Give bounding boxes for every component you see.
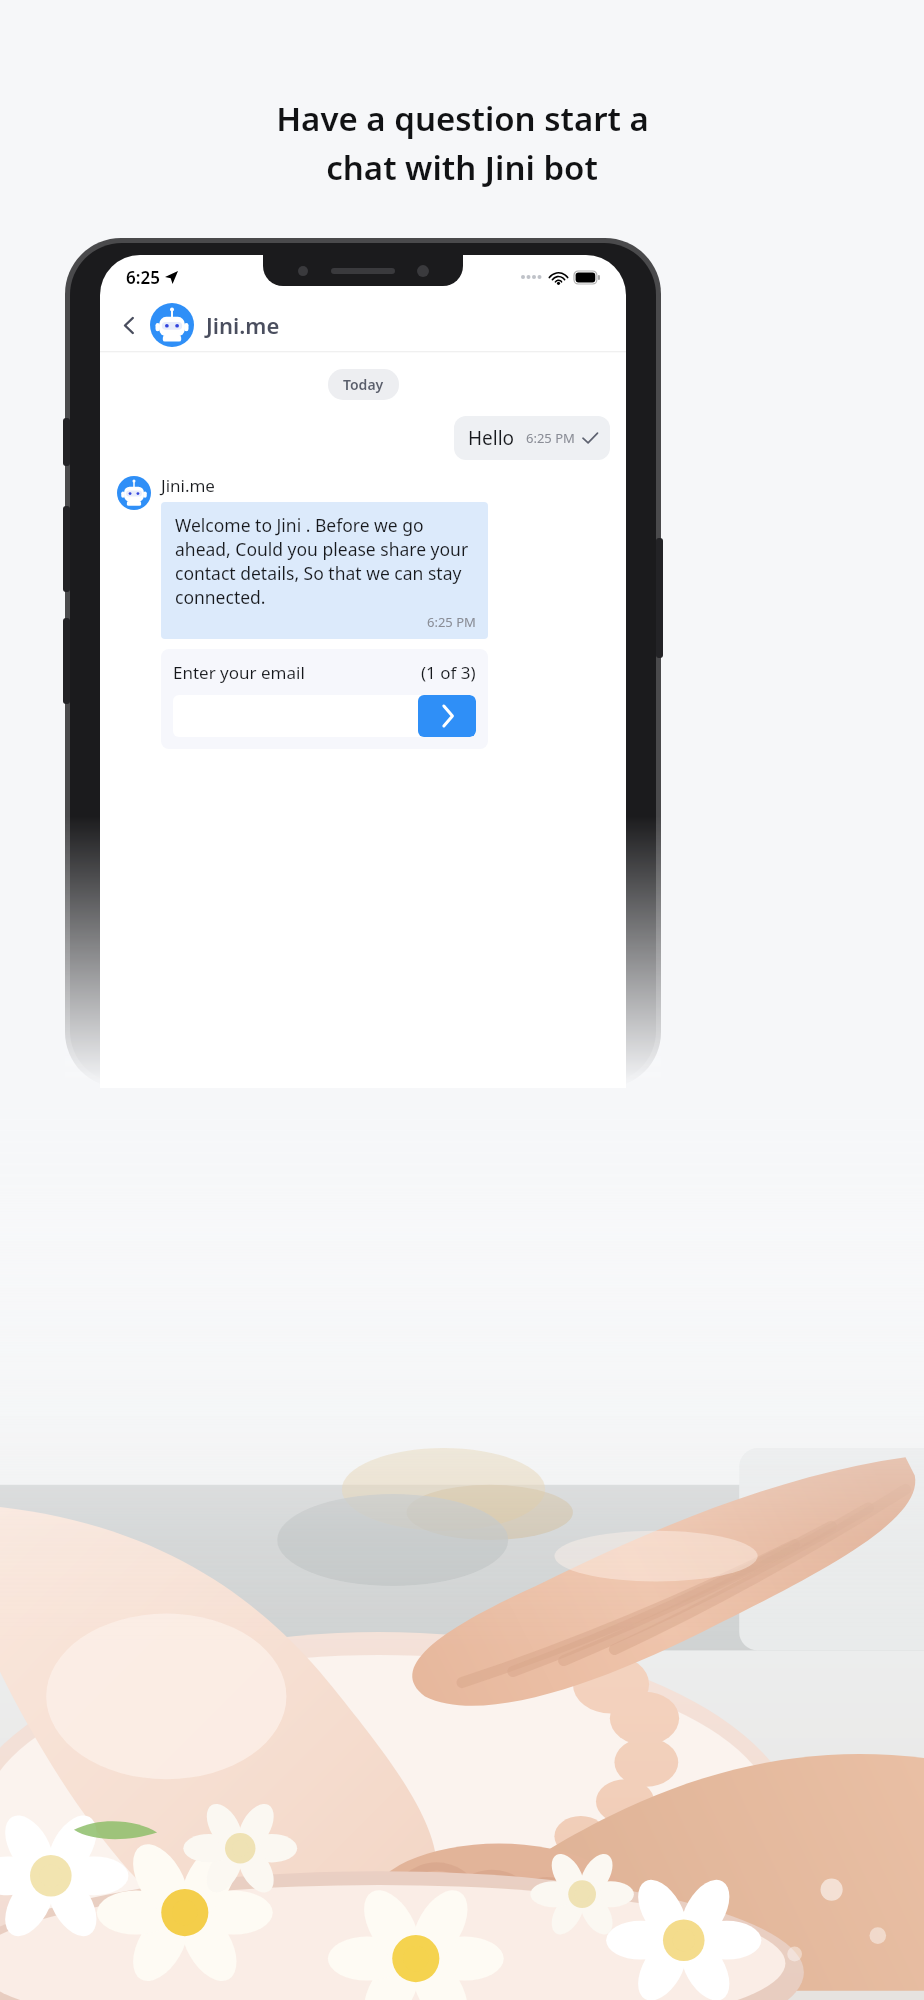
staticText: Welcome to Jini . Before we go ahead, Co… <box>175 513 476 609</box>
button[interactable]: Send <box>418 695 476 737</box>
staticText: Enter your email <box>173 661 305 684</box>
staticText: Jini.me <box>161 474 215 497</box>
staticText: chat with Jini bot <box>326 145 598 190</box>
staticText: 6:25 PM <box>427 613 476 631</box>
button[interactable]: Back <box>112 308 146 342</box>
staticText: 6:25 <box>126 266 160 289</box>
button[interactable]: Enter your email <box>161 649 488 749</box>
button[interactable]: Welcome to Jini . Before we go ahead, Co… <box>161 502 488 639</box>
button[interactable]: Hello <box>454 416 610 460</box>
staticText: (1 of 3) <box>421 661 476 684</box>
staticText: Jini.me <box>206 310 280 340</box>
staticText: Hello <box>468 425 515 451</box>
button[interactable]: Today <box>328 369 399 400</box>
staticText: Today <box>343 375 384 394</box>
staticText: 6:25 PM <box>526 429 575 447</box>
staticText: Have a question start a <box>276 96 649 141</box>
